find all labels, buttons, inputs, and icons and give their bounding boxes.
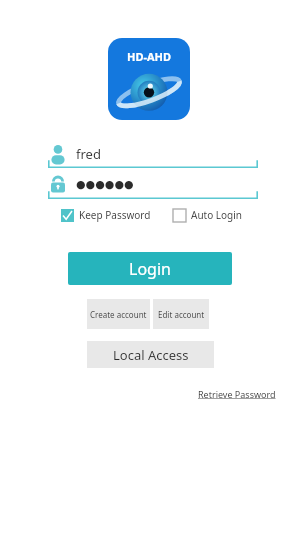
button[interactable]: fred xyxy=(48,139,258,168)
button[interactable]: ●●●●●● xyxy=(48,170,258,199)
staticText: Edit account xyxy=(158,309,205,320)
staticText: Retrieve Password xyxy=(198,388,276,400)
staticText: Local Access xyxy=(113,346,189,364)
button[interactable]: Edit account xyxy=(153,299,209,329)
button[interactable]: Login xyxy=(68,252,232,285)
staticText: ●●●●●● xyxy=(76,178,134,191)
button[interactable]: Auto Login xyxy=(173,208,243,222)
staticText: Auto Login xyxy=(191,208,243,222)
staticText: Create account xyxy=(90,309,147,320)
staticText: fred xyxy=(76,145,101,163)
staticText: HD-AHD xyxy=(127,49,172,64)
button[interactable]: HD-AHD app logo xyxy=(108,38,190,120)
staticText: Login xyxy=(129,258,171,280)
button[interactable]: Keep Password xyxy=(61,208,151,222)
staticText: Keep Password xyxy=(79,208,151,222)
button[interactable]: Create account xyxy=(87,299,150,329)
button[interactable]: Local Access xyxy=(87,341,214,368)
button[interactable]: Retrieve Password xyxy=(196,386,278,402)
